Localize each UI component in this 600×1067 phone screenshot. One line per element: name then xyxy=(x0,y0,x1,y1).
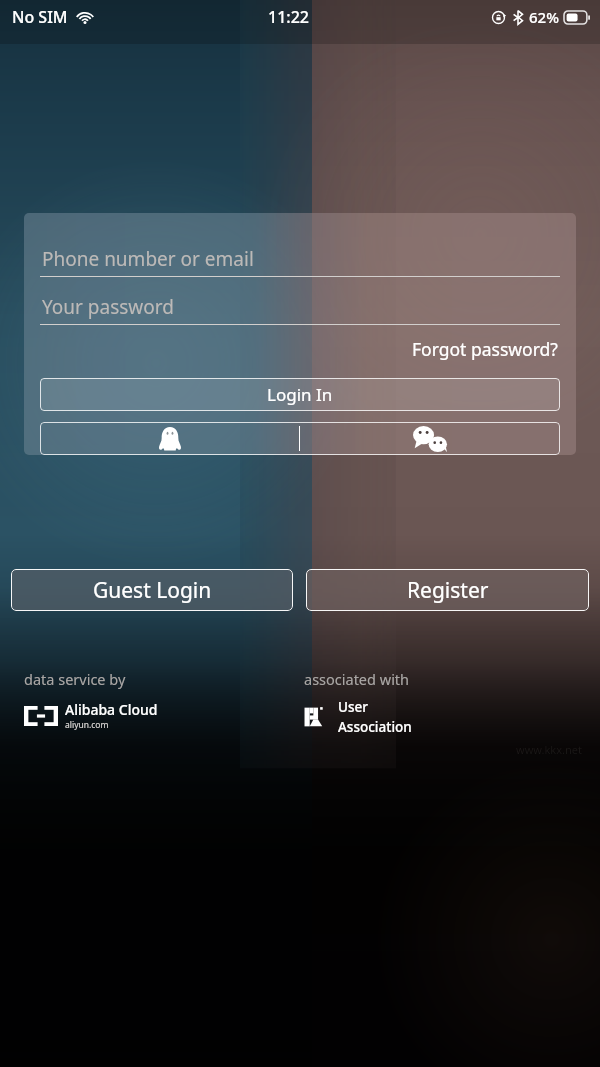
staticText: www.kkx.net xyxy=(516,742,582,757)
staticText: aliyun.com xyxy=(65,719,109,731)
button[interactable]: Phone number or email xyxy=(40,246,560,277)
staticText: data service by xyxy=(24,669,126,689)
staticText: Guest Login xyxy=(93,576,212,605)
button[interactable]: Login In xyxy=(40,378,560,411)
button[interactable]: Sign in with QQ xyxy=(40,422,299,455)
button[interactable]: Your password xyxy=(40,294,560,325)
staticText: User xyxy=(338,698,368,716)
staticText: Phone number or email xyxy=(42,246,254,272)
staticText: associated with xyxy=(304,669,410,689)
staticText: 11:22 xyxy=(268,6,309,28)
button[interactable]: Register xyxy=(306,569,589,611)
button[interactable]: Sign in with WeChat xyxy=(300,422,560,455)
button[interactable]: Forgot password? xyxy=(410,333,560,365)
staticText: Your password xyxy=(42,294,174,320)
staticText: Register xyxy=(407,576,489,605)
staticText: 62% xyxy=(529,7,559,27)
staticText: No SIM xyxy=(12,6,68,28)
button[interactable]: Guest Login xyxy=(11,569,293,611)
staticText: Alibaba Cloud xyxy=(65,700,158,719)
staticText: Association xyxy=(338,718,412,736)
staticText: Login In xyxy=(267,383,333,406)
